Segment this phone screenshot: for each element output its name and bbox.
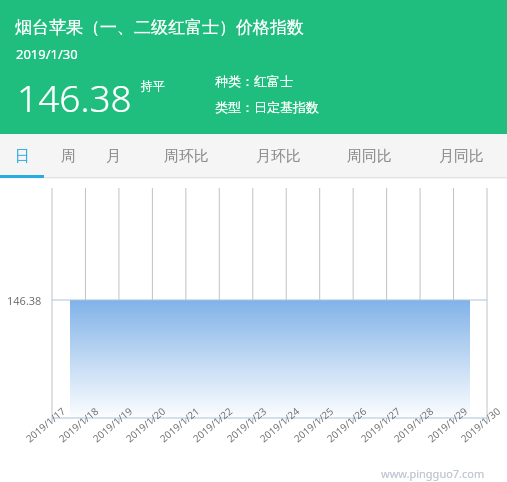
staticText: 2019/1/22 [177, 404, 235, 456]
staticText: 2019/1/26 [311, 404, 369, 456]
staticText: 烟台苹果（一、二级红富士）价格指数 [15, 17, 304, 38]
button[interactable]: 周同比 [339, 134, 399, 178]
button[interactable]: 日 [7, 134, 37, 178]
staticText: 周同比 [347, 147, 392, 166]
staticText: 2019/1/20 [110, 404, 168, 456]
staticText: 类型：日定基指数 [215, 99, 319, 115]
staticText: 2019/1/19 [77, 404, 135, 456]
staticText: 2019/1/28 [378, 404, 436, 456]
button[interactable]: 月同比 [431, 134, 491, 178]
button[interactable]: 周环比 [156, 134, 216, 178]
staticText: 146.38 [7, 293, 42, 308]
staticText: 持平 [141, 78, 165, 93]
staticText: 2019/1/30 [445, 404, 503, 456]
staticText: 2019/1/27 [345, 404, 403, 456]
staticText: 2019/1/25 [278, 404, 336, 456]
button[interactable]: 月环比 [248, 134, 308, 178]
staticText: 周环比 [164, 147, 209, 166]
staticText: 月环比 [256, 147, 301, 166]
staticText: www.pingguo7.com [381, 466, 485, 481]
staticText: 月 [106, 147, 121, 166]
staticText: 2019/1/21 [144, 404, 202, 456]
staticText: 月同比 [439, 147, 484, 166]
staticText: 2019/1/18 [43, 404, 101, 456]
button[interactable]: 周 [53, 134, 83, 178]
staticText: 2019/1/29 [412, 404, 470, 456]
staticText: 2019/1/17 [10, 404, 68, 456]
staticText: 周 [61, 147, 76, 166]
staticText: 2019/1/24 [244, 404, 302, 456]
staticText: 日 [15, 147, 30, 166]
staticText: 146.38 [17, 72, 132, 122]
staticText: 2019/1/30 [16, 45, 78, 63]
staticText: 种类：红富士 [215, 73, 293, 89]
button[interactable]: 月 [98, 134, 128, 178]
staticText: 2019/1/23 [211, 404, 269, 456]
